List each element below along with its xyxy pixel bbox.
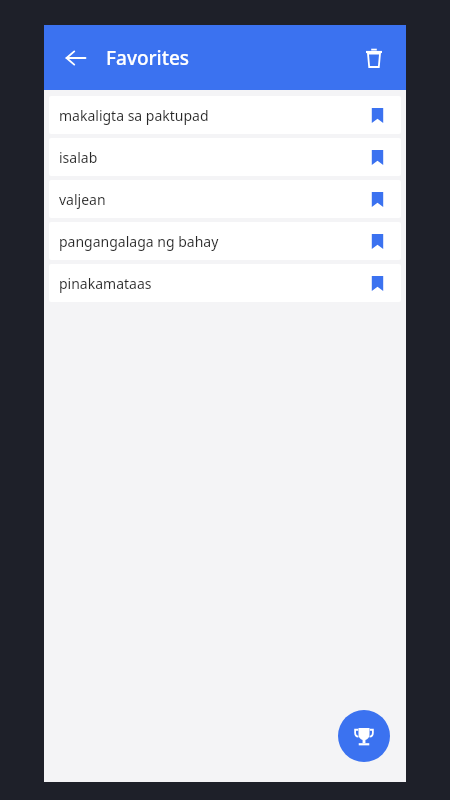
button[interactable]: pinakamataas bbox=[49, 264, 401, 302]
staticText: makaligta sa paktupad bbox=[59, 106, 363, 125]
button[interactable]: valjean bbox=[49, 180, 401, 218]
button[interactable]: Remove bookmark bbox=[363, 101, 391, 129]
button[interactable]: Remove bookmark bbox=[363, 143, 391, 171]
button[interactable]: isalab bbox=[49, 138, 401, 176]
button[interactable]: Remove bookmark bbox=[363, 185, 391, 213]
button[interactable]: makaligta sa paktupad bbox=[49, 96, 401, 134]
staticText: Favorites bbox=[106, 45, 190, 71]
staticText: valjean bbox=[59, 190, 363, 209]
button[interactable]: Remove bookmark bbox=[363, 269, 391, 297]
button[interactable]: Leaderboard bbox=[338, 710, 390, 762]
button[interactable]: pangangalaga ng bahay bbox=[49, 222, 401, 260]
button[interactable]: Remove bookmark bbox=[363, 227, 391, 255]
staticText: pangangalaga ng bahay bbox=[59, 232, 363, 251]
staticText: isalab bbox=[59, 148, 363, 167]
staticText: pinakamataas bbox=[59, 274, 363, 293]
button[interactable]: Delete all bbox=[352, 36, 396, 80]
button[interactable]: Back bbox=[52, 34, 100, 82]
